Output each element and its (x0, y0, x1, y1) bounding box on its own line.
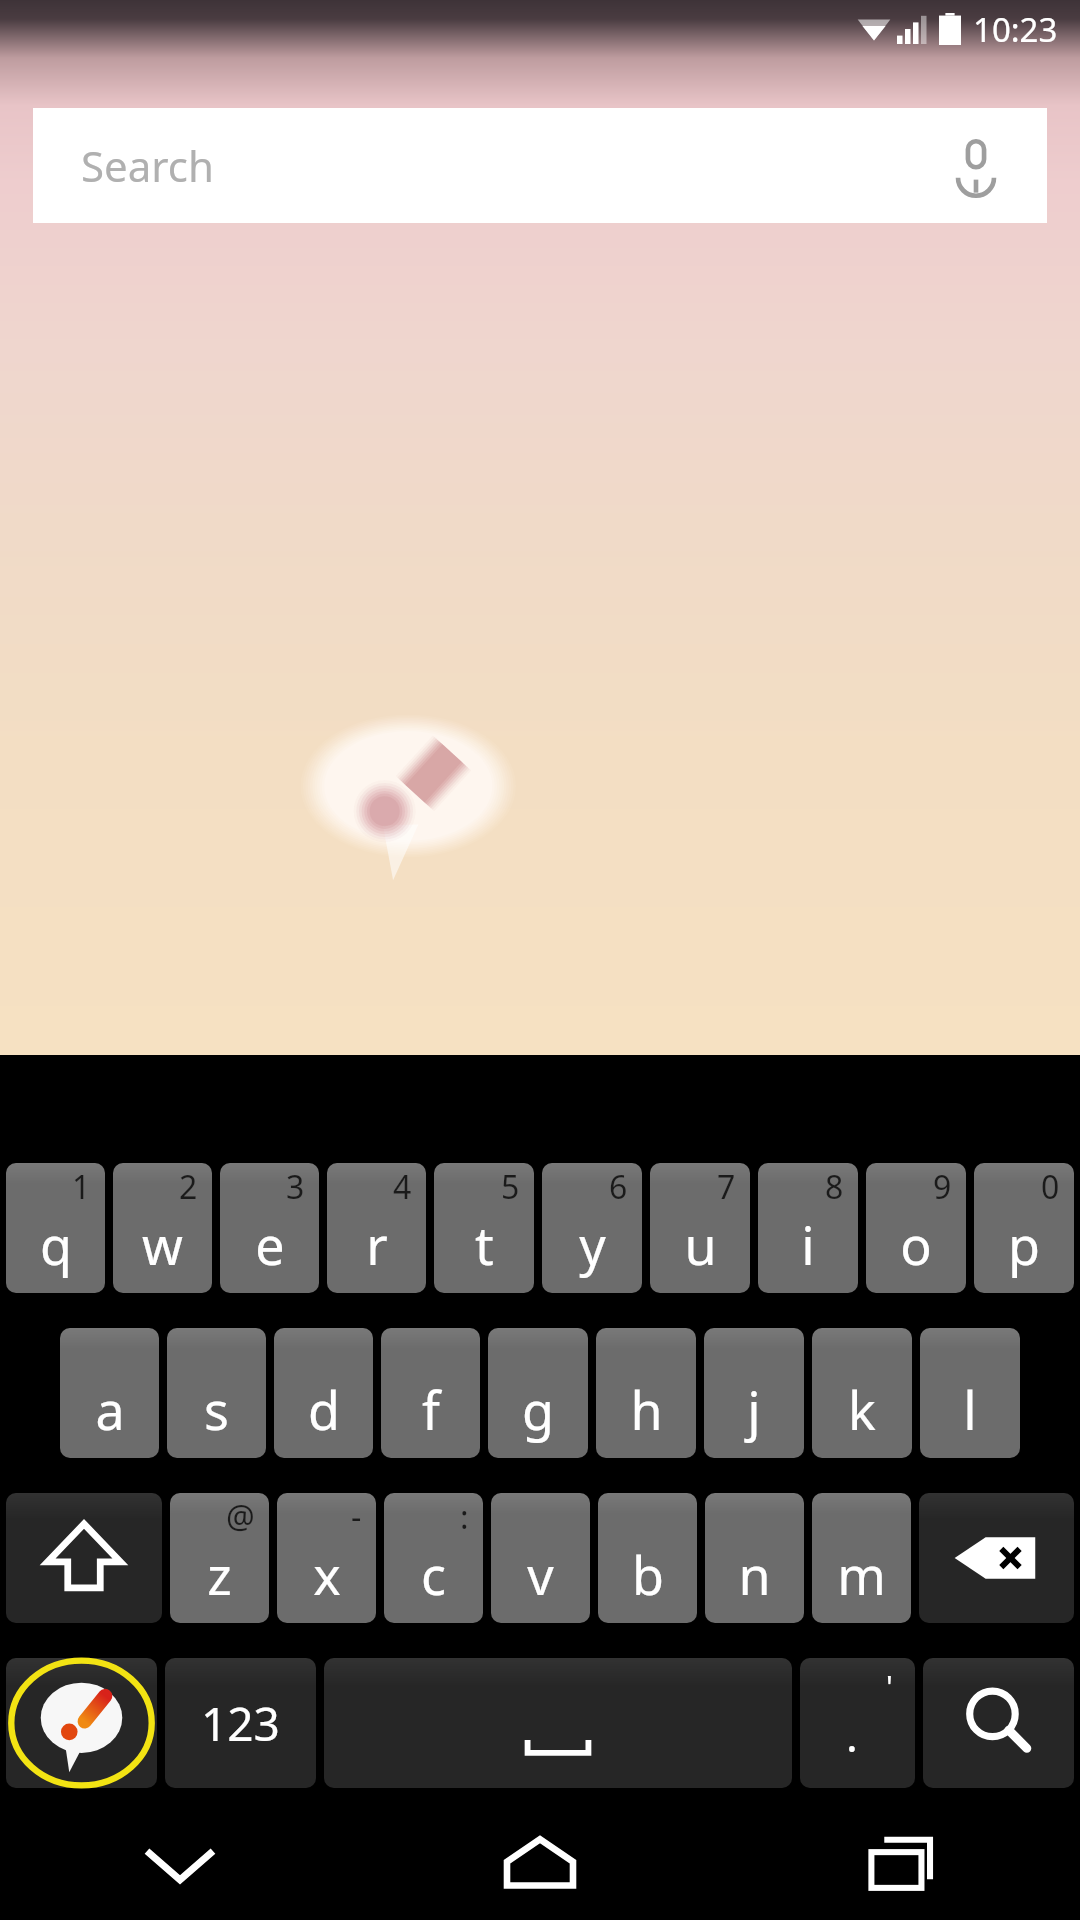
button[interactable]: Backspace (919, 1493, 1074, 1623)
button[interactable]: @ (170, 1493, 269, 1623)
button[interactable]: Voice search (945, 135, 1007, 197)
staticText: x (313, 1539, 341, 1610)
button[interactable]: - (277, 1493, 376, 1623)
staticText: 1 (72, 1165, 91, 1209)
button[interactable]: j (704, 1328, 804, 1458)
staticText: r (366, 1209, 388, 1280)
button[interactable]: Change keyboard (6, 1658, 157, 1788)
staticText: z (207, 1539, 232, 1610)
staticText: b (632, 1539, 664, 1610)
staticText: g (522, 1374, 554, 1445)
staticText: k (848, 1374, 876, 1445)
staticText: 6 (609, 1165, 628, 1209)
staticText: j (747, 1374, 761, 1445)
button[interactable]: h (596, 1328, 696, 1458)
staticText: p (1008, 1209, 1040, 1280)
button[interactable]: Recent apps (720, 1810, 1080, 1920)
staticText: - (351, 1495, 362, 1539)
staticText: @ (226, 1495, 255, 1539)
staticText: e (255, 1209, 285, 1280)
staticText: y (579, 1209, 606, 1280)
staticText: 123 (201, 1692, 280, 1755)
button[interactable]: s (167, 1328, 266, 1458)
staticText: 0 (1041, 1165, 1060, 1209)
staticText: h (630, 1374, 663, 1445)
staticText: m (837, 1539, 886, 1610)
staticText: a (95, 1374, 125, 1445)
button[interactable]: l (920, 1328, 1020, 1458)
staticText: Search (81, 137, 214, 194)
staticText: l (963, 1374, 977, 1445)
staticText: . (846, 1705, 858, 1765)
staticText: 2 (179, 1165, 198, 1209)
button[interactable]: 3 (220, 1163, 319, 1293)
button[interactable]: Space (324, 1658, 792, 1788)
button[interactable]: d (274, 1328, 373, 1458)
staticText: u (684, 1209, 717, 1280)
button[interactable]: 2 (113, 1163, 212, 1293)
button[interactable]: 8 (758, 1163, 858, 1293)
staticText: 3 (286, 1165, 305, 1209)
staticText: 10:23 (973, 7, 1058, 52)
button[interactable]: 4 (327, 1163, 426, 1293)
button[interactable]: 123 (165, 1658, 316, 1788)
staticText: n (738, 1539, 771, 1610)
staticText: 9 (933, 1165, 952, 1209)
staticText: q (40, 1209, 72, 1280)
button[interactable]: a (60, 1328, 159, 1458)
button[interactable]: Hide keyboard (0, 1810, 360, 1920)
button[interactable]: Home (360, 1810, 720, 1920)
staticText: c (421, 1539, 446, 1610)
staticText: w (142, 1209, 183, 1280)
staticText: d (308, 1374, 340, 1445)
staticText: 4 (393, 1165, 412, 1209)
button[interactable]: m (812, 1493, 911, 1623)
button[interactable]: Search (923, 1658, 1074, 1788)
staticText: 8 (825, 1165, 844, 1209)
staticText: ' (886, 1666, 893, 1707)
button[interactable]: ' (800, 1658, 915, 1788)
button[interactable]: : (384, 1493, 483, 1623)
staticText: : (460, 1495, 469, 1539)
button[interactable]: 1 (6, 1163, 105, 1293)
button[interactable]: Shift (6, 1493, 162, 1623)
button[interactable]: n (705, 1493, 804, 1623)
button[interactable]: b (598, 1493, 697, 1623)
staticText: o (900, 1209, 932, 1280)
button[interactable]: f (381, 1328, 480, 1458)
button[interactable]: 6 (542, 1163, 642, 1293)
button[interactable]: g (488, 1328, 588, 1458)
staticText: 7 (717, 1165, 736, 1209)
staticText: t (475, 1209, 494, 1280)
button[interactable]: v (491, 1493, 590, 1623)
staticText: f (422, 1374, 440, 1445)
button[interactable]: 5 (434, 1163, 534, 1293)
staticText: i (801, 1209, 815, 1280)
staticText: 5 (501, 1165, 520, 1209)
button[interactable]: 7 (650, 1163, 750, 1293)
staticText: v (527, 1539, 554, 1610)
button[interactable]: 9 (866, 1163, 966, 1293)
staticText: s (204, 1374, 229, 1445)
button[interactable]: k (812, 1328, 912, 1458)
button[interactable]: Search (33, 108, 1047, 223)
button[interactable]: 0 (974, 1163, 1074, 1293)
